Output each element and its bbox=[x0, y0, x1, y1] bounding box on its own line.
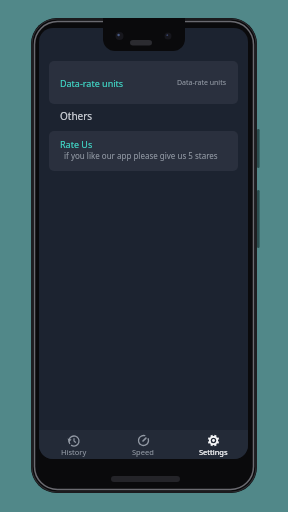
staticText: Data-rate units bbox=[60, 77, 124, 89]
staticText: Others bbox=[60, 109, 93, 123]
button[interactable]: History bbox=[39, 430, 108, 459]
staticText: Speed bbox=[132, 447, 154, 457]
staticText: if you like our app please give us 5 sta… bbox=[64, 150, 218, 161]
button[interactable]: Speed bbox=[108, 430, 178, 459]
button[interactable]: Data-rate units bbox=[49, 61, 238, 104]
staticText: History bbox=[61, 447, 87, 457]
button[interactable]: Settings bbox=[178, 430, 248, 459]
button[interactable]: Rate Us bbox=[49, 131, 238, 171]
staticText: Data-rate units bbox=[177, 78, 227, 88]
staticText: Rate Us bbox=[60, 138, 93, 150]
staticText: Settings bbox=[199, 447, 228, 457]
